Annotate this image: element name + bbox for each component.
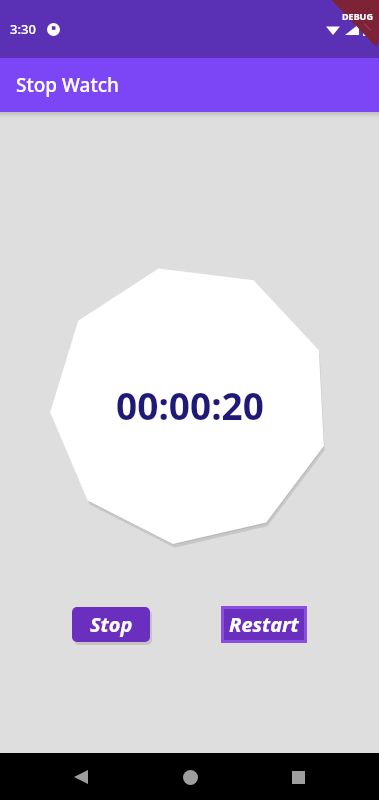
staticText: Stop Watch	[16, 72, 119, 98]
button[interactable]: Recent apps	[279, 758, 317, 796]
button[interactable]: Stop	[72, 607, 150, 642]
staticText: Stop	[90, 611, 133, 638]
staticText: Restart	[229, 611, 299, 638]
button[interactable]: Restart	[224, 609, 304, 640]
button[interactable]: Back	[62, 758, 100, 796]
staticText: 3:30	[10, 20, 36, 38]
staticText: DEBUG	[342, 10, 373, 22]
button[interactable]: Home	[171, 758, 209, 796]
staticText: 00:00:20	[116, 380, 264, 430]
